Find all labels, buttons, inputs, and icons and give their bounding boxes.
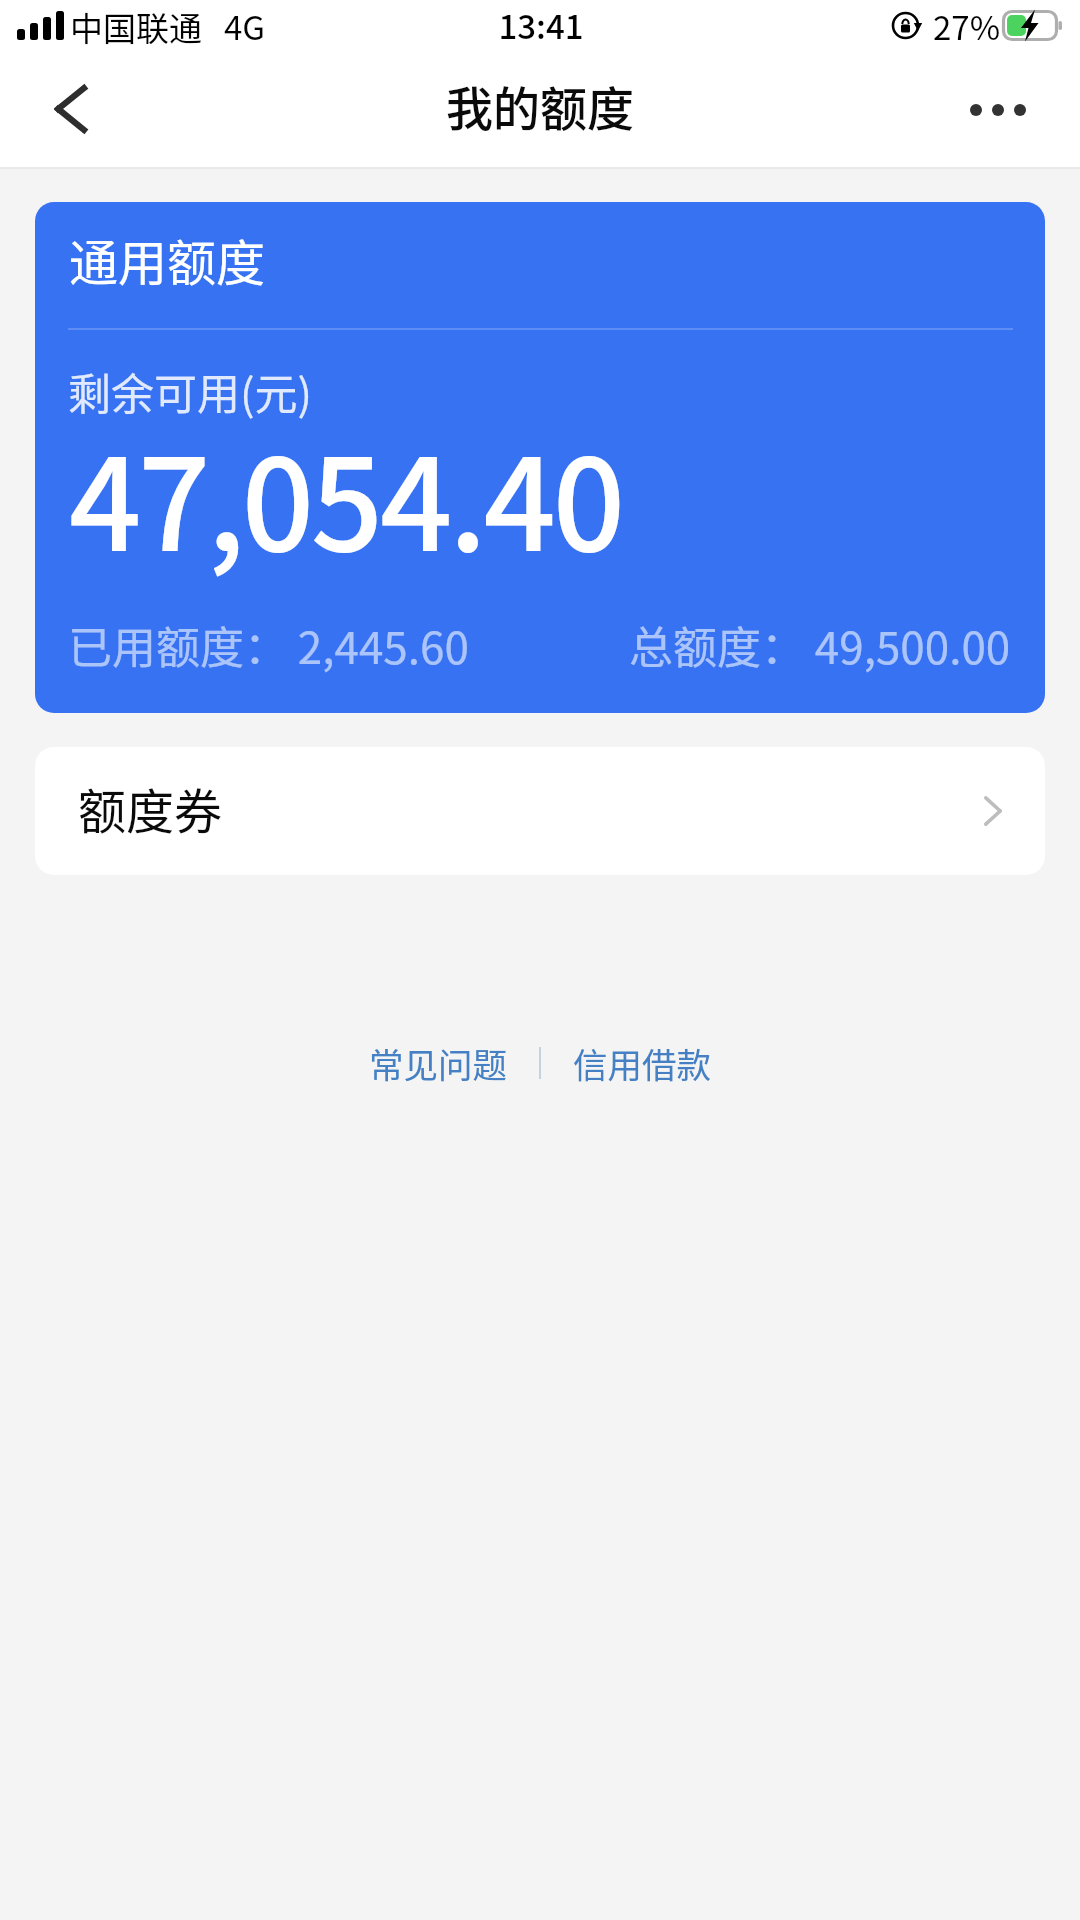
staticText: 信用借款 xyxy=(573,1038,711,1088)
button[interactable]: 信用借款 xyxy=(563,1030,721,1096)
staticText: 剩余可用(元) xyxy=(68,360,313,422)
staticText: 已用额度： 2,445.60 xyxy=(68,613,469,677)
staticText: 我的额度 xyxy=(0,71,1080,139)
staticText: 4G xyxy=(224,2,266,50)
button[interactable]: 通用额度 xyxy=(35,202,1045,713)
button[interactable]: 常见问题 xyxy=(359,1030,517,1096)
staticText: 通用额度 xyxy=(69,224,266,295)
staticText: 27% xyxy=(933,2,1001,50)
button[interactable]: 额度券 xyxy=(35,747,1045,875)
staticText: 中国联通 xyxy=(70,3,202,51)
staticText: 13:41 xyxy=(1,1,1080,49)
staticText: 常见问题 xyxy=(369,1038,507,1088)
button[interactable]: Back xyxy=(0,60,140,167)
button[interactable]: More options xyxy=(940,60,1080,167)
staticText: 总额度： 49,500.00 xyxy=(629,613,1011,677)
staticText: 47,054.40 xyxy=(69,404,622,588)
staticText: 额度券 xyxy=(78,773,223,843)
